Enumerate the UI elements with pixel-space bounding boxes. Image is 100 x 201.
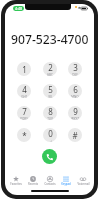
button[interactable]: Favorites <box>8 176 24 186</box>
staticText: TUV <box>47 117 53 120</box>
staticText: Keypad <box>61 182 71 186</box>
staticText: Voicemail <box>77 182 90 186</box>
button[interactable]: Keypad <box>58 176 74 186</box>
staticText: GHI <box>21 95 27 98</box>
button[interactable]: Call <box>42 149 57 164</box>
button[interactable]: * <box>17 128 31 142</box>
button[interactable]: Recents <box>25 176 41 186</box>
staticText: 3 <box>73 62 78 73</box>
button[interactable]: Voicemail <box>75 176 91 186</box>
button[interactable]: 0 <box>43 128 57 142</box>
staticText: 4:48 <box>15 6 23 11</box>
button[interactable]: 3 <box>68 62 82 76</box>
button[interactable]: Contacts <box>42 176 58 186</box>
button[interactable]: 1 <box>17 62 31 76</box>
staticText: 2 <box>48 62 53 73</box>
button[interactable]: # <box>68 128 82 142</box>
button[interactable]: 6 <box>68 84 82 98</box>
button[interactable]: 2 <box>43 62 57 76</box>
staticText: 9 <box>73 106 78 117</box>
staticText: 6 <box>73 84 78 95</box>
staticText: ABC <box>47 73 53 76</box>
staticText: 7 <box>22 106 27 117</box>
staticText: 0 <box>48 128 53 139</box>
staticText: 5 <box>48 84 53 95</box>
staticText: Contacts <box>44 182 56 186</box>
staticText: # <box>72 130 78 141</box>
staticText: * <box>22 130 27 141</box>
button[interactable]: 5 <box>43 84 57 98</box>
staticText: 1 <box>22 64 27 75</box>
staticText: PQRS <box>20 117 28 120</box>
staticText: JKL <box>48 95 53 98</box>
button[interactable]: 4 <box>17 84 31 98</box>
staticText: Recents <box>28 182 38 186</box>
staticText: DEF <box>72 73 78 76</box>
button[interactable]: 7 <box>17 106 31 120</box>
staticText: MNO <box>71 95 79 98</box>
staticText: + <box>50 139 52 142</box>
staticText: 4 <box>22 84 27 95</box>
staticText: 907-523-4700 <box>11 31 89 44</box>
button[interactable]: 9 <box>68 106 82 120</box>
button[interactable]: 8 <box>43 106 57 120</box>
staticText: Favorites <box>10 182 22 186</box>
staticText: WXYZ <box>71 117 79 120</box>
staticText: 8 <box>48 106 53 117</box>
